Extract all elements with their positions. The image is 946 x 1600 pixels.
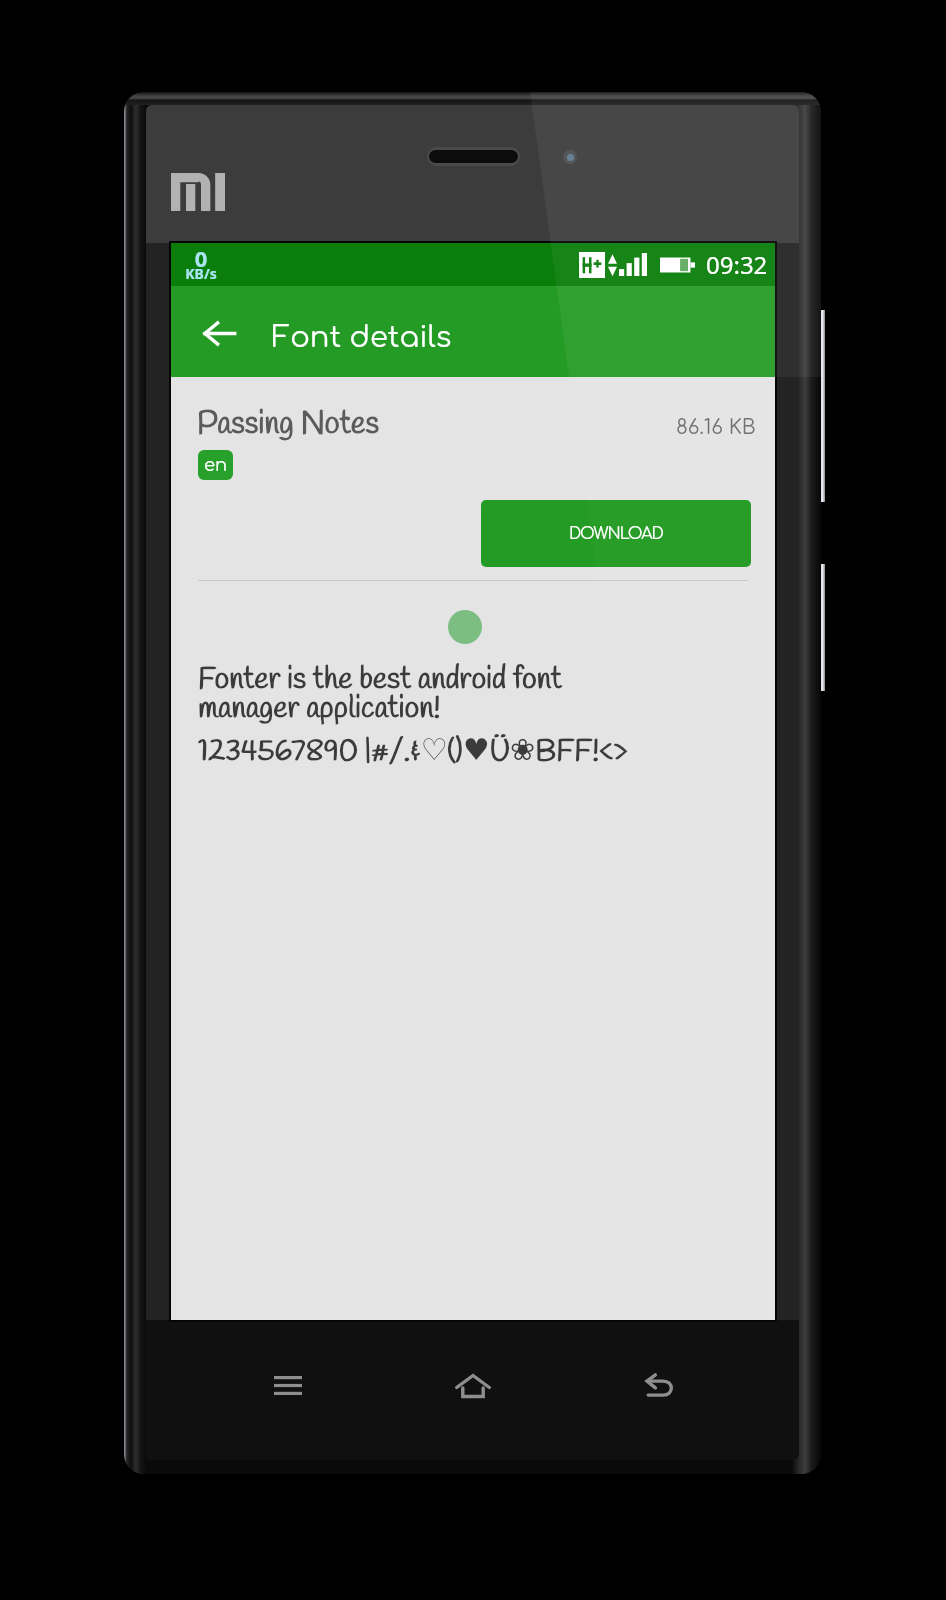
staticText: DOWNLOAD xyxy=(569,525,663,543)
staticText: 0 xyxy=(185,243,217,273)
button[interactable]: Back xyxy=(603,1347,715,1423)
staticText: 1234567890 |#/.&♡()♥Ü❀BFF!<> xyxy=(198,732,628,772)
button[interactable]: Back xyxy=(186,305,252,361)
button[interactable]: en xyxy=(198,450,233,480)
button[interactable]: Home xyxy=(417,1347,529,1423)
staticText: KB/s xyxy=(185,264,217,283)
button[interactable]: DOWNLOAD xyxy=(481,500,751,567)
staticText: 86.16 KB xyxy=(676,416,756,438)
staticText: Passing Notes xyxy=(197,404,380,445)
staticText: Fonter is the best android font manager … xyxy=(198,660,562,729)
staticText: en xyxy=(204,455,228,475)
staticText: Font details xyxy=(272,321,452,353)
button[interactable]: Recent apps xyxy=(232,1347,344,1423)
staticText: 09:32 xyxy=(706,248,768,281)
